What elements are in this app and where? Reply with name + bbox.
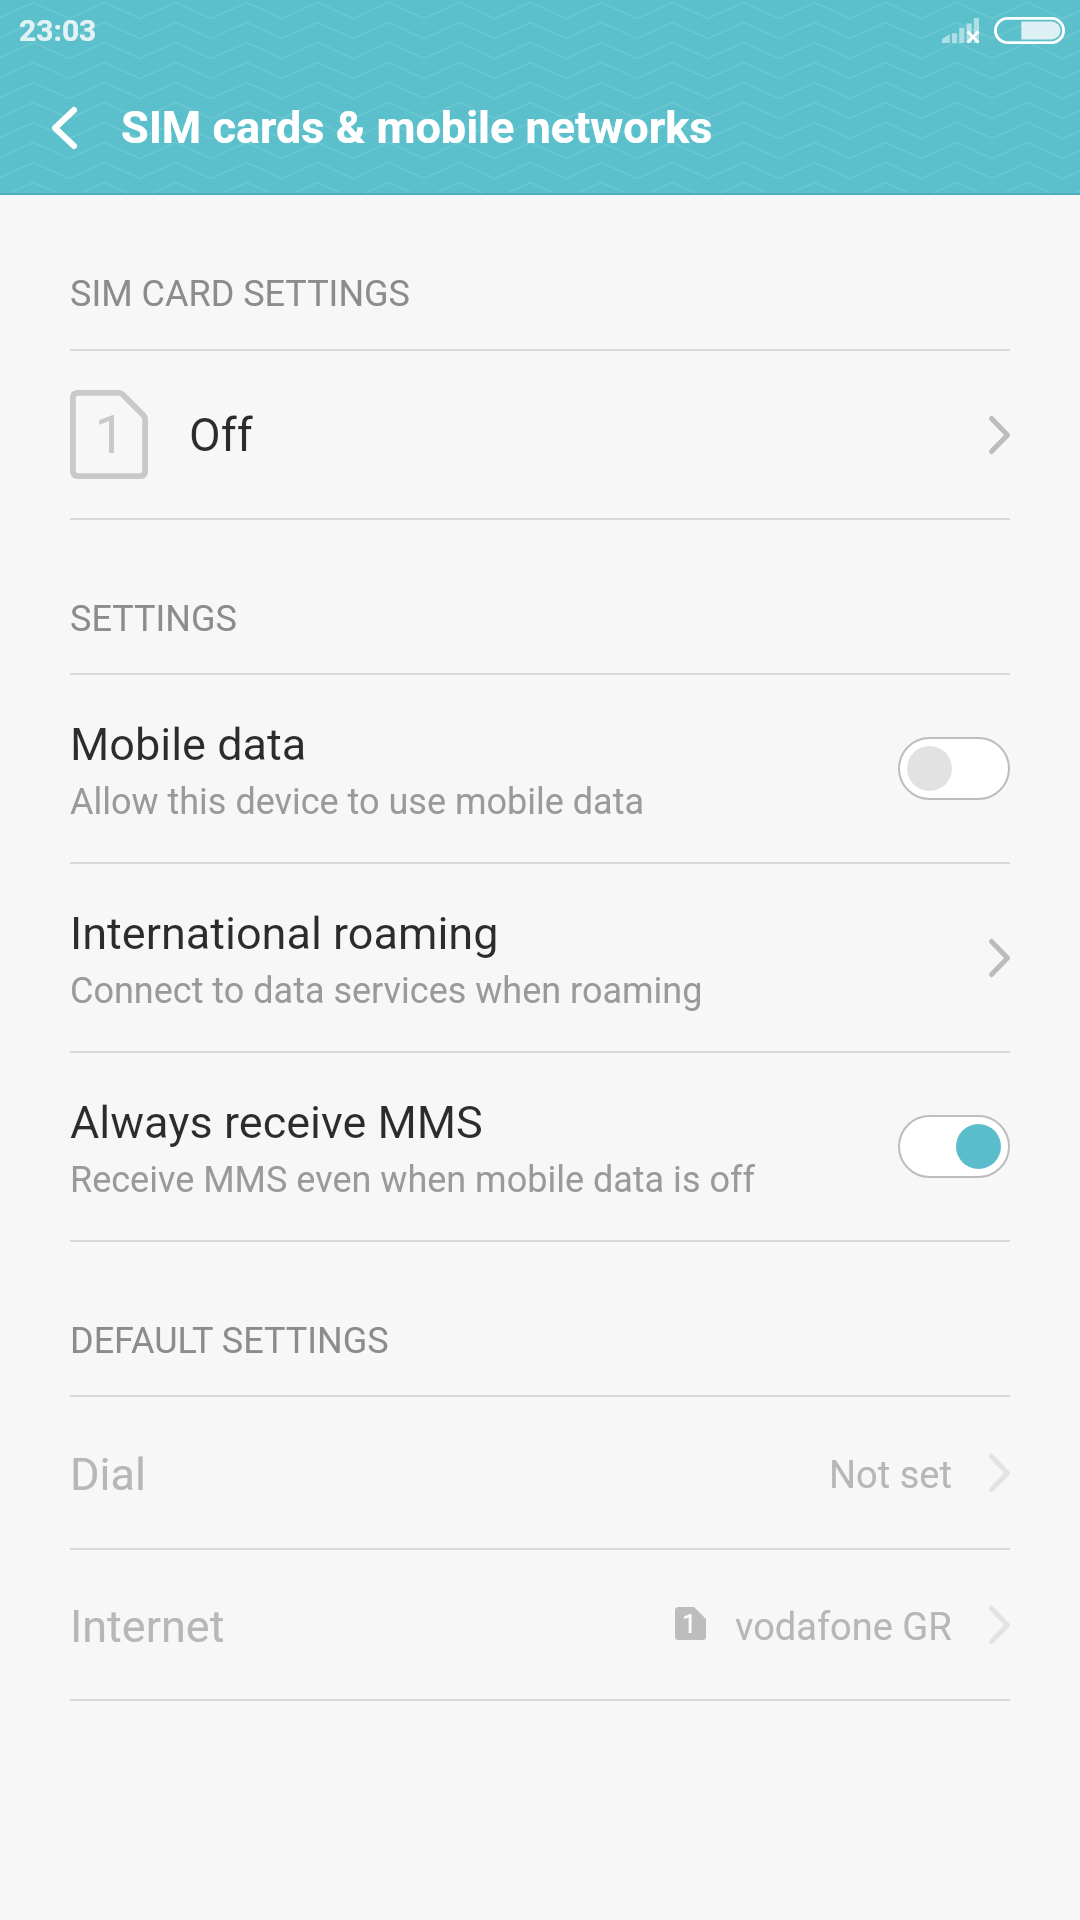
staticText: Receive MMS even when mobile data is off [70, 1159, 755, 1201]
staticText: 1 [95, 404, 125, 466]
staticText: Always receive MMS [70, 1096, 483, 1149]
button[interactable]: Always receive MMS [0, 1053, 1080, 1240]
staticText: Off [189, 408, 253, 462]
staticText: vodafone GR [735, 1605, 952, 1650]
staticText: DEFAULT SETTINGS [70, 1320, 389, 1362]
button[interactable]: Toggle off [898, 737, 1010, 800]
staticText: 1 [682, 1609, 697, 1639]
button[interactable]: Toggle on [898, 1115, 1010, 1178]
button[interactable]: 1 [0, 351, 1080, 518]
button[interactable]: Dial [0, 1397, 1080, 1548]
button[interactable]: Mobile data [0, 675, 1080, 862]
button[interactable]: Back [0, 58, 121, 195]
staticText: Internet [70, 1600, 225, 1653]
staticText: Allow this device to use mobile data [70, 781, 645, 823]
staticText: Not set [829, 1453, 952, 1498]
staticText: Connect to data services when roaming [70, 970, 703, 1012]
staticText: 23:03 [19, 13, 97, 48]
button[interactable]: International roaming [0, 864, 1080, 1051]
staticText: SETTINGS [70, 598, 237, 640]
staticText: Dial [70, 1448, 146, 1501]
staticText: SIM CARD SETTINGS [70, 273, 410, 315]
staticText: SIM cards & mobile networks [121, 101, 713, 154]
staticText: Mobile data [70, 718, 307, 771]
button[interactable]: Internet [0, 1550, 1080, 1699]
staticText: International roaming [70, 907, 499, 960]
